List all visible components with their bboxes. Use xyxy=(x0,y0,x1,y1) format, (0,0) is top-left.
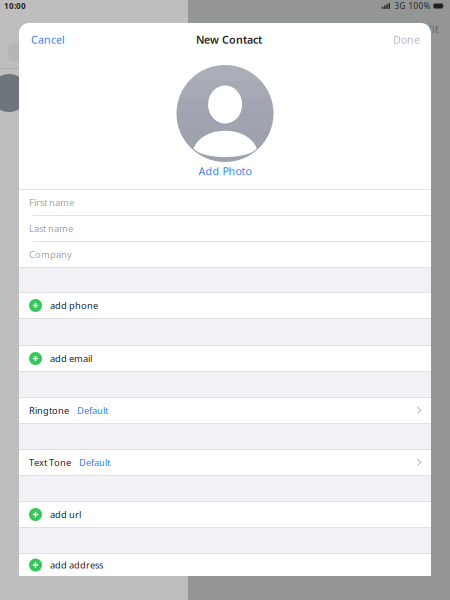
staticText: add phone xyxy=(50,299,98,312)
staticText: Company xyxy=(29,248,72,261)
button[interactable]: add address xyxy=(19,554,431,576)
staticText: New Contact xyxy=(196,32,262,47)
button[interactable]: Text Tone xyxy=(19,450,431,475)
button[interactable]: Add Photo xyxy=(192,165,257,177)
staticText: Ringtone xyxy=(29,404,69,417)
staticText: 100% xyxy=(408,1,430,11)
staticText: add email xyxy=(50,352,92,365)
button[interactable]: Cancel xyxy=(19,23,75,56)
staticText: Default xyxy=(79,456,110,469)
staticText: 10:00 xyxy=(4,1,26,11)
staticText: add address xyxy=(50,559,103,571)
staticText: First name xyxy=(29,196,74,209)
button[interactable]: add phone xyxy=(19,293,431,318)
button[interactable]: add url xyxy=(19,502,431,527)
staticText: add url xyxy=(50,508,81,521)
staticText: Edit xyxy=(419,22,439,36)
staticText: Add Photo xyxy=(198,164,251,178)
staticText: Cancel xyxy=(31,32,65,47)
staticText: Text Tone xyxy=(29,456,71,469)
staticText: 3G xyxy=(394,1,405,11)
staticText: Last name xyxy=(29,222,73,235)
staticText: Done xyxy=(393,32,420,47)
staticText: Default xyxy=(77,404,108,417)
button[interactable]: add email xyxy=(19,346,431,371)
button[interactable]: Done xyxy=(383,23,431,56)
button[interactable]: Ringtone xyxy=(19,398,431,423)
